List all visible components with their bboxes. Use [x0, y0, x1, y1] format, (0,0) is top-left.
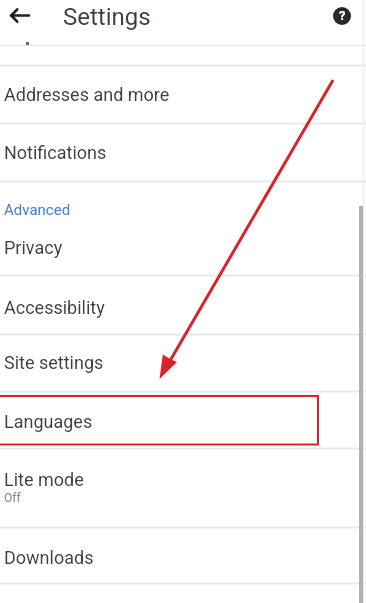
staticText: Lite mode — [4, 469, 84, 490]
button[interactable]: Languages — [0, 391, 366, 448]
button[interactable]: Lite mode — [0, 448, 366, 527]
staticText: Privacy — [4, 237, 63, 258]
staticText: Accessibility — [4, 297, 105, 318]
staticText: Downloads — [4, 547, 94, 568]
staticText: Addresses and more — [4, 84, 170, 105]
staticText: Advanced — [4, 201, 71, 219]
staticText: Off — [4, 491, 21, 505]
button[interactable]: Site settings — [0, 334, 366, 391]
staticText: ? — [339, 8, 346, 23]
staticText: Site settings — [4, 352, 104, 373]
staticText: Settings — [63, 3, 151, 31]
button[interactable]: Notifications — [0, 123, 366, 181]
button[interactable]: Back — [2, 1, 34, 33]
button[interactable]: Accessibility — [0, 275, 366, 334]
button[interactable]: Help — [332, 6, 352, 26]
button[interactable]: Privacy — [0, 181, 366, 275]
button[interactable]: Addresses and more — [0, 65, 366, 123]
button[interactable]: Downloads — [0, 527, 366, 583]
staticText: Notifications — [4, 142, 107, 163]
staticText: Languages — [4, 411, 93, 432]
